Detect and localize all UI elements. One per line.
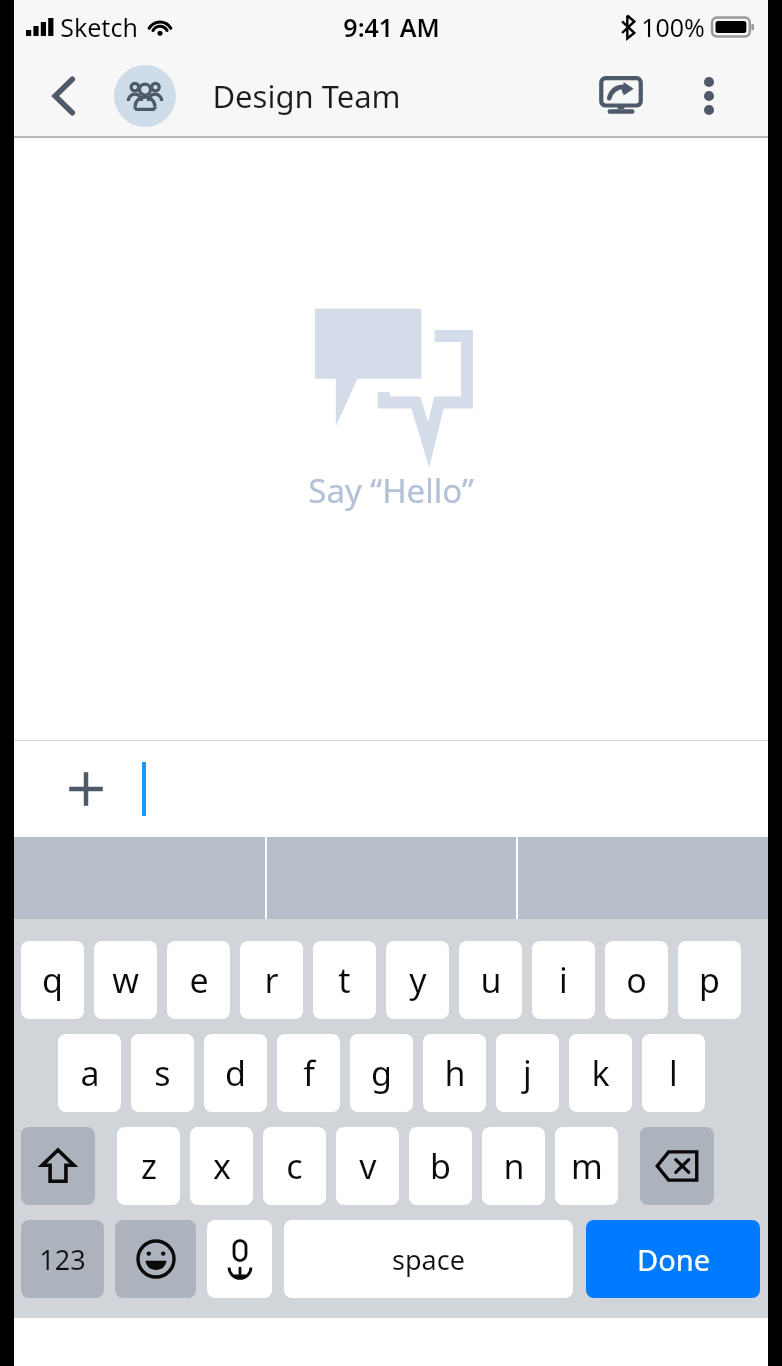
button[interactable]: i	[532, 941, 595, 1019]
button[interactable]: k	[569, 1034, 632, 1112]
button[interactable]: d	[204, 1034, 267, 1112]
button[interactable]: u	[459, 941, 522, 1019]
button[interactable]: h	[423, 1034, 486, 1112]
button[interactable]: o	[605, 941, 668, 1019]
button[interactable]: s	[131, 1034, 194, 1112]
staticText: e	[189, 957, 209, 1003]
button[interactable]: g	[350, 1034, 413, 1112]
button[interactable]: Backspace	[640, 1127, 714, 1205]
staticText: s	[154, 1050, 171, 1096]
staticText: x	[213, 1143, 231, 1189]
button[interactable]: Add attachment	[56, 759, 116, 819]
staticText: o	[626, 957, 647, 1003]
staticText: Sketch	[60, 10, 138, 44]
staticText: j	[523, 1050, 532, 1096]
staticText: Done	[637, 1240, 710, 1279]
button[interactable]: c	[263, 1127, 326, 1205]
button[interactable]: l	[642, 1034, 705, 1112]
button[interactable]: t	[313, 941, 376, 1019]
button[interactable]: j	[496, 1034, 559, 1112]
staticText: v	[359, 1143, 377, 1189]
button[interactable]: 123	[21, 1220, 104, 1298]
button[interactable]: e	[167, 941, 230, 1019]
button[interactable]: n	[482, 1127, 545, 1205]
button[interactable]: Emoji	[115, 1220, 196, 1298]
staticText: m	[571, 1143, 603, 1189]
button[interactable]: More options	[682, 69, 736, 123]
button[interactable]: w	[94, 941, 157, 1019]
staticText: 9:41 AM	[343, 10, 440, 44]
button[interactable]: f	[277, 1034, 340, 1112]
button[interactable]: x	[190, 1127, 253, 1205]
staticText: w	[112, 957, 139, 1003]
staticText: h	[444, 1050, 466, 1096]
button[interactable]: v	[336, 1127, 399, 1205]
staticText: Design Team	[212, 75, 401, 117]
staticText: Say “Hello”	[308, 468, 474, 513]
button[interactable]: a	[58, 1034, 121, 1112]
staticText: space	[392, 1241, 465, 1278]
staticText: d	[225, 1050, 246, 1096]
staticText: y	[409, 957, 427, 1003]
staticText: g	[371, 1050, 392, 1096]
staticText: t	[338, 957, 351, 1003]
button[interactable]: m	[555, 1127, 618, 1205]
staticText: r	[264, 957, 279, 1003]
button[interactable]: b	[409, 1127, 472, 1205]
staticText: a	[80, 1050, 100, 1096]
staticText: 100%	[641, 10, 705, 44]
staticText: n	[503, 1143, 525, 1189]
staticText: p	[699, 957, 720, 1003]
button[interactable]: r	[240, 941, 303, 1019]
button[interactable]: Group avatar	[114, 65, 176, 127]
button[interactable]: p	[678, 941, 741, 1019]
button[interactable]: Shift	[21, 1127, 95, 1205]
staticText: f	[303, 1050, 315, 1096]
button[interactable]: space	[284, 1220, 573, 1298]
staticText: l	[669, 1050, 678, 1096]
staticText: q	[42, 957, 63, 1003]
staticText: 123	[39, 1241, 86, 1278]
staticText: z	[141, 1143, 157, 1189]
button[interactable]: Voice input	[207, 1220, 272, 1298]
button[interactable]: y	[386, 941, 449, 1019]
staticText: u	[480, 957, 502, 1003]
button[interactable]: q	[21, 941, 84, 1019]
button[interactable]: z	[117, 1127, 180, 1205]
button[interactable]: Done	[586, 1220, 760, 1298]
button[interactable]: Back	[36, 68, 92, 124]
button[interactable]: Cast screen	[592, 67, 650, 125]
staticText: i	[559, 957, 568, 1003]
staticText: c	[286, 1143, 303, 1189]
staticText: b	[430, 1143, 451, 1189]
staticText: k	[591, 1050, 610, 1096]
